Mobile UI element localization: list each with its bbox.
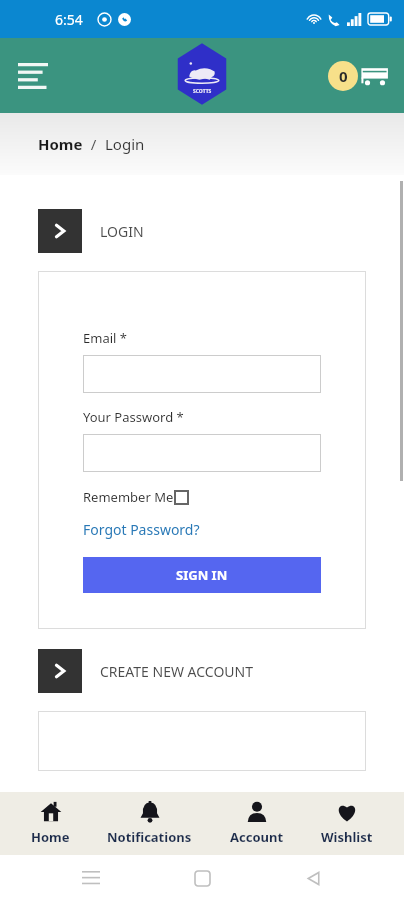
staticText: / [83, 134, 105, 154]
button[interactable]: Back [293, 858, 333, 898]
button[interactable]: Home [182, 858, 222, 898]
staticText: 6:54 [55, 10, 83, 29]
staticText: Account [230, 828, 284, 846]
staticText: Remember Me [83, 488, 174, 506]
staticText: 0 [339, 66, 348, 86]
button[interactable]: Wishlist [315, 797, 379, 850]
button[interactable]: Recents [71, 858, 111, 898]
staticText: Wishlist [321, 828, 373, 846]
staticText: Login [105, 134, 145, 154]
staticText: SIGN IN [176, 566, 228, 584]
staticText: Your Password * [83, 408, 184, 426]
button[interactable]: Home [25, 797, 76, 850]
staticText: SCOTTS [193, 88, 212, 95]
staticText: Home [31, 828, 70, 846]
button[interactable]: Remember Me [83, 488, 189, 506]
button[interactable]: SIGN IN [83, 557, 321, 593]
button[interactable]: Home [38, 134, 83, 154]
button[interactable]: Notifications [101, 797, 198, 850]
button[interactable]: Menu [10, 53, 56, 99]
staticText: Forgot Password? [83, 520, 200, 539]
staticText: Email * [83, 329, 127, 347]
staticText: LOGIN [100, 222, 144, 241]
button[interactable]: Account [224, 797, 290, 850]
staticText: Notifications [107, 828, 192, 846]
button[interactable]: Cart [328, 61, 392, 91]
button[interactable]: Scotts logo [174, 43, 230, 105]
staticText: CREATE NEW ACCOUNT [100, 662, 253, 681]
button[interactable]: LOGIN [38, 209, 404, 253]
button[interactable]: CREATE NEW ACCOUNT [38, 649, 404, 693]
button[interactable]: Forgot Password? [83, 520, 200, 539]
staticText: Home [38, 134, 83, 154]
